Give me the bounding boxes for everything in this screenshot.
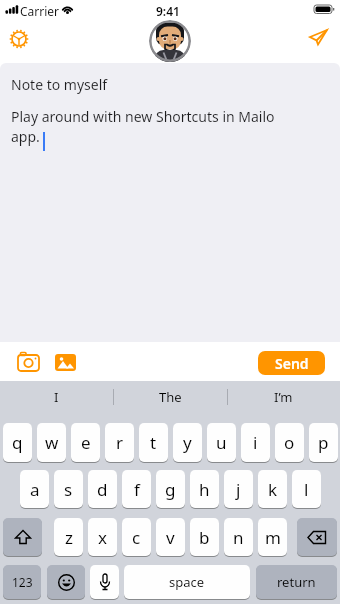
button[interactable]: I — [0, 381, 113, 412]
button[interactable]: i — [241, 423, 270, 462]
button[interactable]: The — [113, 381, 227, 412]
button[interactable]: t — [139, 423, 168, 462]
staticText: z — [65, 526, 73, 549]
staticText: I’m — [274, 388, 293, 406]
staticText: q — [12, 431, 23, 454]
button[interactable]: f — [122, 470, 151, 508]
button[interactable]: return — [256, 565, 337, 599]
button[interactable]: g — [156, 470, 185, 508]
staticText: v — [166, 526, 175, 549]
button[interactable] — [306, 27, 332, 53]
button[interactable] — [47, 565, 85, 599]
staticText: d — [97, 478, 108, 501]
button[interactable] — [55, 354, 77, 372]
staticText: t — [150, 431, 157, 454]
button[interactable] — [149, 20, 191, 62]
button[interactable]: e — [71, 423, 100, 462]
staticText: x — [98, 526, 107, 549]
button[interactable] — [8, 28, 30, 50]
staticText: Play around with new Shortcuts in Mailo … — [11, 107, 275, 146]
staticText: r — [116, 431, 124, 454]
button[interactable]: s — [54, 470, 83, 508]
button[interactable]: n — [224, 518, 253, 556]
staticText: b — [199, 526, 210, 549]
button[interactable]: l — [292, 470, 321, 508]
staticText: c — [132, 526, 141, 549]
button[interactable]: x — [88, 518, 117, 556]
button[interactable]: z — [54, 518, 83, 556]
button[interactable]: h — [190, 470, 219, 508]
staticText: w — [45, 431, 59, 454]
button[interactable]: c — [122, 518, 151, 556]
staticText: h — [199, 478, 210, 501]
staticText: e — [81, 431, 91, 454]
button[interactable]: q — [3, 423, 32, 462]
staticText: u — [216, 431, 227, 454]
staticText: Carrier — [20, 3, 60, 19]
staticText: I — [54, 388, 59, 406]
button[interactable]: b — [190, 518, 219, 556]
button[interactable]: a — [20, 470, 49, 508]
button[interactable]: Send — [258, 351, 325, 375]
staticText: y — [183, 431, 192, 454]
staticText: o — [284, 431, 295, 454]
button[interactable] — [3, 518, 42, 556]
button[interactable]: d — [88, 470, 117, 508]
button[interactable]: r — [105, 423, 134, 462]
button[interactable]: p — [309, 423, 338, 462]
staticText: a — [30, 478, 40, 501]
staticText: l — [304, 478, 309, 501]
staticText: m — [265, 526, 281, 549]
staticText: Note to myself — [11, 75, 108, 94]
button[interactable] — [90, 565, 119, 599]
staticText: g — [165, 478, 176, 501]
staticText: return — [277, 573, 316, 591]
button[interactable]: m — [258, 518, 287, 556]
button[interactable] — [297, 518, 337, 556]
staticText: k — [268, 478, 278, 501]
button[interactable]: w — [37, 423, 66, 462]
button[interactable]: 123 — [3, 565, 41, 599]
staticText: n — [233, 526, 244, 549]
button[interactable]: u — [207, 423, 236, 462]
staticText: 123 — [12, 574, 33, 590]
staticText: The — [159, 388, 182, 406]
button[interactable]: space — [124, 565, 250, 599]
staticText: s — [64, 478, 73, 501]
button[interactable]: v — [156, 518, 185, 556]
staticText: j — [236, 478, 241, 501]
button[interactable]: o — [275, 423, 304, 462]
button[interactable]: I’m — [227, 381, 340, 412]
staticText: 9:41 — [156, 3, 180, 19]
button[interactable]: Note to myself — [0, 63, 340, 342]
staticText: i — [253, 431, 258, 454]
staticText: f — [134, 478, 140, 501]
button[interactable]: y — [173, 423, 202, 462]
button[interactable]: k — [258, 470, 287, 508]
staticText: Send — [275, 354, 309, 373]
staticText: p — [318, 431, 329, 454]
button[interactable] — [16, 351, 42, 372]
staticText: space — [169, 573, 205, 591]
button[interactable]: j — [224, 470, 253, 508]
